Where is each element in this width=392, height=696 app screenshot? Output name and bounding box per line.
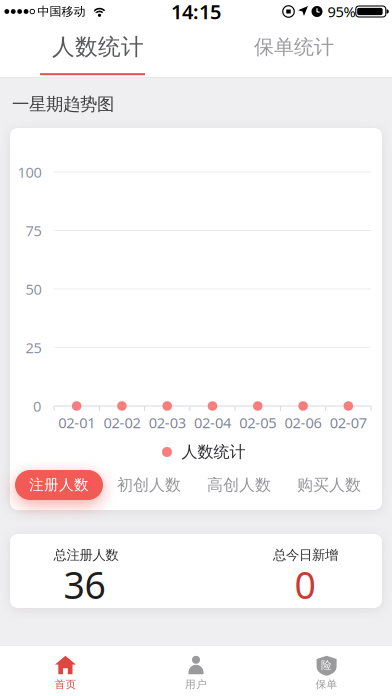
staticText: 0 [294, 560, 315, 609]
button[interactable]: 用户 [131, 646, 261, 696]
staticText: 02-04 [194, 413, 231, 432]
staticText: 02-02 [103, 413, 140, 432]
staticText: 购买人数 [297, 475, 361, 495]
staticText: 用户 [185, 678, 207, 691]
staticText: 25 [25, 338, 41, 357]
staticText: 险 [321, 659, 332, 672]
button[interactable]: 注册人数 [15, 470, 103, 500]
staticText: 75 [25, 221, 41, 240]
staticText: 36 [63, 560, 105, 609]
staticText: 人数统计 [52, 33, 144, 61]
staticText: 0 [33, 396, 41, 416]
staticText: 保单统计 [254, 35, 334, 59]
button[interactable]: 保单统计 [196, 25, 392, 69]
staticText: 95% [327, 2, 355, 21]
staticText: 初创人数 [117, 475, 181, 495]
staticText: 保单 [316, 678, 338, 691]
staticText: 人数统计 [181, 442, 245, 462]
staticText: 100 [17, 162, 41, 182]
button[interactable]: 险 [261, 646, 392, 696]
button[interactable]: 首页 [0, 646, 131, 696]
button[interactable]: 高创人数 [194, 470, 284, 500]
staticText: 02-01 [58, 413, 95, 432]
staticText: 总今日新增 [273, 547, 338, 563]
staticText: 02-07 [330, 413, 367, 432]
staticText: 14:15 [171, 0, 221, 25]
staticText: 中国移动 [37, 4, 85, 19]
staticText: 02-05 [239, 413, 276, 432]
button[interactable]: 初创人数 [104, 470, 194, 500]
staticText: 02-03 [149, 413, 186, 432]
button[interactable]: 购买人数 [284, 470, 374, 500]
staticText: 一星期趋势图 [12, 94, 114, 115]
staticText: 高创人数 [207, 475, 271, 495]
staticText: 注册人数 [29, 476, 89, 494]
button[interactable]: 人数统计 [0, 25, 196, 69]
staticText: 50 [25, 279, 41, 299]
staticText: 02-06 [285, 413, 322, 432]
staticText: 总注册人数 [53, 547, 118, 563]
staticText: 首页 [54, 678, 76, 691]
